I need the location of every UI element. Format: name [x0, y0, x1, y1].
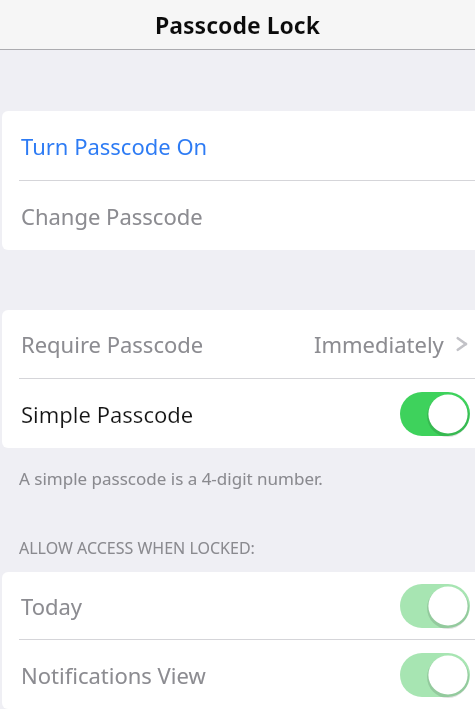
staticText: Simple Passcode — [21, 399, 194, 429]
staticText: Turn Passcode On — [21, 131, 208, 161]
button[interactable]: Notifications View — [2, 640, 475, 709]
staticText: Immediately — [314, 329, 444, 359]
staticText: Require Passcode — [21, 329, 204, 359]
staticText: A simple passcode is a 4-digit number. — [19, 467, 323, 490]
button[interactable]: Change Passcode — [2, 181, 475, 250]
button[interactable]: Today — [2, 572, 475, 639]
button[interactable]: Simple Passcode — [2, 379, 475, 448]
staticText: ALLOW ACCESS WHEN LOCKED: — [19, 537, 255, 559]
button[interactable]: Notifications View switch — [400, 653, 470, 697]
staticText: Passcode Lock — [155, 9, 321, 40]
button[interactable]: Turn Passcode On — [2, 111, 475, 180]
button[interactable]: Today switch — [400, 584, 470, 628]
staticText: Today — [21, 591, 83, 621]
staticText: Change Passcode — [21, 201, 203, 231]
button[interactable]: Simple Passcode switch — [400, 392, 470, 436]
button[interactable]: Require Passcode — [2, 310, 475, 378]
staticText: Notifications View — [21, 660, 206, 690]
other: Require Passcode options — [455, 332, 469, 356]
